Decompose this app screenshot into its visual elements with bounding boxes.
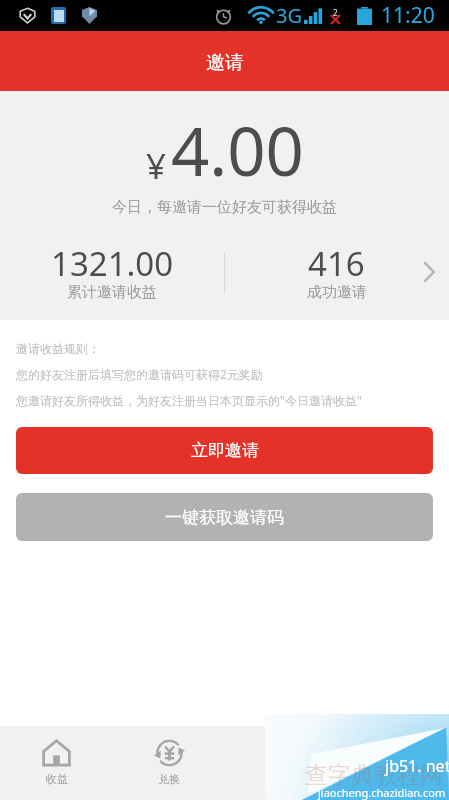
staticText: 一键获取邀请码	[165, 507, 284, 528]
staticText: 11:20	[381, 1, 435, 30]
button[interactable]: 收益	[0, 726, 113, 800]
staticText: 4.00	[171, 104, 304, 195]
button[interactable]: 立即邀请	[16, 427, 433, 474]
staticText: 累计邀请收益	[67, 283, 157, 302]
staticText: 2	[333, 7, 338, 18]
staticText: 您的好友注册后填写您的邀请码可获得2元奖励	[16, 366, 263, 382]
staticText: 您邀请好友所得收益，为好友注册当日本页显示的"今日邀请收益"	[16, 392, 362, 408]
staticText: 成功邀请	[307, 283, 367, 302]
button[interactable]: 查看邀请明细	[409, 248, 449, 296]
staticText: 收益	[46, 772, 68, 786]
staticText: jb51. net	[385, 755, 449, 777]
staticText: 邀请	[206, 51, 244, 75]
staticText: 邀请收益规则：	[16, 341, 100, 356]
staticText: 查字典教程网	[305, 761, 443, 790]
button[interactable]: 兑换	[113, 726, 225, 800]
staticText: 立即邀请	[191, 440, 259, 461]
button[interactable]: 一键获取邀请码	[16, 493, 433, 541]
staticText: 1321.00	[51, 241, 174, 286]
staticText: 兑换	[158, 772, 180, 786]
staticText: jiaocheng.chazidian.com	[318, 785, 446, 800]
staticText: ¥	[146, 142, 167, 190]
staticText: 416	[308, 241, 365, 286]
staticText: 3G	[276, 2, 302, 29]
staticText: 今日，每邀请一位好友可获得收益	[112, 198, 337, 217]
